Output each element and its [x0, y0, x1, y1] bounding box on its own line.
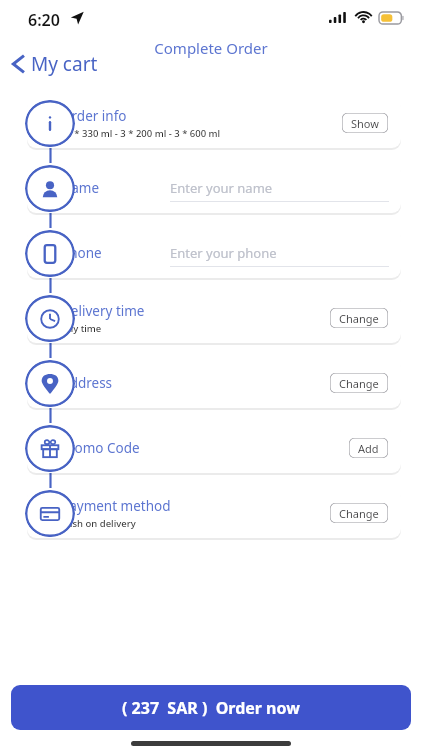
- staticText: Enter your name: [170, 179, 273, 197]
- button[interactable]: Order info: [27, 98, 401, 148]
- staticText: Enter your phone: [170, 244, 277, 262]
- staticText: Change: [339, 311, 379, 326]
- button[interactable]: Change: [329, 307, 389, 329]
- button[interactable]: Enter your name: [170, 179, 389, 197]
- staticText: Show: [351, 116, 379, 131]
- staticText: Change: [339, 506, 379, 521]
- staticText: Address: [61, 374, 113, 392]
- staticText: Promo Code: [61, 439, 140, 457]
- button[interactable]: Change: [329, 502, 389, 524]
- button[interactable]: Name: [25, 165, 75, 212]
- staticText: Complete Order: [0, 38, 422, 58]
- staticText: Name: [61, 179, 100, 197]
- button[interactable]: Order info: [25, 100, 75, 147]
- button[interactable]: Change: [329, 372, 389, 394]
- staticText: Delivery time: [61, 302, 145, 320]
- button[interactable]: Show: [341, 112, 389, 134]
- staticText: Cash on delivery: [61, 517, 136, 530]
- staticText: My cart: [31, 51, 98, 77]
- staticText: Any time: [61, 322, 102, 335]
- button[interactable]: Delivery time: [25, 295, 75, 342]
- button[interactable]: Phone: [27, 228, 401, 278]
- staticText: Change: [339, 376, 379, 391]
- button[interactable]: Add: [348, 437, 389, 459]
- button[interactable]: Name: [27, 163, 401, 213]
- button[interactable]: Payment method: [25, 490, 75, 537]
- staticText: 6:20: [28, 9, 60, 31]
- staticText: ( 237 SAR ) Order now: [122, 697, 300, 719]
- staticText: Payment method: [61, 497, 171, 515]
- button[interactable]: ( 237 SAR ) Order now: [11, 685, 411, 730]
- button[interactable]: Promo code: [25, 425, 75, 472]
- button[interactable]: Phone: [25, 230, 75, 277]
- button[interactable]: Address: [27, 358, 401, 408]
- staticText: Order info: [61, 107, 127, 125]
- button[interactable]: Delivery time: [27, 293, 401, 343]
- button[interactable]: Promo Code: [27, 423, 401, 473]
- button[interactable]: Payment method: [27, 488, 401, 538]
- button[interactable]: Enter your phone: [170, 244, 389, 262]
- staticText: Phone: [61, 244, 102, 262]
- staticText: Add: [358, 441, 379, 456]
- button[interactable]: Address: [25, 360, 75, 407]
- staticText: 10 * 330 ml - 3 * 200 ml - 3 * 600 ml: [61, 127, 221, 140]
- button[interactable]: My cart: [6, 47, 104, 81]
